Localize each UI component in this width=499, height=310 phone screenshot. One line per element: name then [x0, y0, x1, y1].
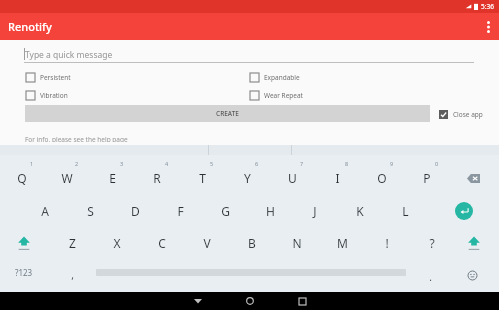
- button[interactable]: F: [164, 200, 196, 222]
- staticText: Vibration: [40, 91, 68, 100]
- staticText: G: [221, 203, 230, 219]
- staticText: ?: [429, 235, 435, 251]
- button[interactable]: M: [326, 232, 358, 254]
- button[interactable]: Y: [231, 167, 263, 189]
- staticText: !: [385, 235, 389, 251]
- staticText: 5:36: [481, 2, 494, 11]
- staticText: Renotify: [8, 19, 52, 34]
- button[interactable]: H: [254, 200, 286, 222]
- button[interactable]: E: [96, 167, 128, 189]
- button[interactable]: Expandable: [250, 69, 300, 85]
- staticText: 8: [345, 160, 349, 167]
- staticText: N: [292, 235, 302, 251]
- staticText: 0: [435, 160, 439, 167]
- button[interactable]: Enter: [455, 202, 473, 220]
- staticText: K: [356, 203, 364, 219]
- button[interactable]: W: [51, 167, 83, 189]
- button[interactable]: ?123: [8, 262, 40, 282]
- staticText: 1: [30, 160, 34, 167]
- button[interactable]: D: [119, 200, 151, 222]
- staticText: D: [131, 203, 140, 219]
- button[interactable]: Wear Repeat: [250, 87, 303, 103]
- staticText: O: [377, 170, 387, 186]
- staticText: R: [153, 170, 161, 186]
- staticText: B: [248, 235, 256, 251]
- button[interactable]: G: [209, 200, 241, 222]
- staticText: I: [335, 170, 340, 186]
- button[interactable]: J: [299, 200, 331, 222]
- button[interactable]: C: [146, 232, 178, 254]
- button[interactable]: .: [414, 266, 446, 288]
- staticText: 4: [165, 160, 169, 167]
- staticText: C: [158, 235, 166, 251]
- staticText: H: [266, 203, 275, 219]
- staticText: P: [423, 170, 431, 186]
- staticText: L: [402, 203, 409, 219]
- button[interactable]: L: [389, 200, 421, 222]
- button[interactable]: N: [281, 232, 313, 254]
- button[interactable]: Recent apps: [292, 292, 312, 310]
- staticText: ?123: [15, 267, 33, 278]
- button[interactable]: X: [101, 232, 133, 254]
- staticText: A: [41, 203, 49, 219]
- staticText: 7: [300, 160, 304, 167]
- staticText: 3: [120, 160, 124, 167]
- button[interactable]: Home: [240, 292, 260, 310]
- staticText: T: [199, 170, 206, 186]
- button[interactable]: Q: [6, 167, 38, 189]
- button[interactable]: O: [366, 167, 398, 189]
- staticText: 2: [75, 160, 79, 167]
- button[interactable]: Z: [56, 232, 88, 254]
- staticText: M: [337, 235, 348, 251]
- staticText: 5: [210, 160, 214, 167]
- staticText: X: [113, 235, 121, 251]
- button[interactable]: P: [411, 167, 443, 189]
- staticText: F: [177, 203, 184, 219]
- staticText: Persistent: [40, 73, 71, 82]
- button[interactable]: More options: [477, 16, 499, 38]
- button[interactable]: !: [371, 232, 403, 254]
- staticText: Wear Repeat: [264, 91, 303, 100]
- staticText: For info, please see the help page: [25, 135, 128, 142]
- button[interactable]: Backspace: [460, 167, 486, 189]
- staticText: 6: [255, 160, 259, 167]
- staticText: U: [288, 170, 297, 186]
- staticText: W: [61, 170, 73, 186]
- staticText: E: [109, 170, 116, 186]
- button[interactable]: Shift right: [460, 231, 488, 255]
- staticText: V: [203, 235, 211, 251]
- staticText: CREATE: [216, 109, 239, 118]
- button[interactable]: CREATE: [25, 105, 430, 122]
- staticText: Y: [244, 170, 251, 186]
- button[interactable]: ,: [56, 264, 88, 286]
- button[interactable]: Shift: [10, 231, 38, 255]
- staticText: J: [313, 203, 317, 219]
- staticText: Z: [69, 235, 76, 251]
- button[interactable]: T: [186, 167, 218, 189]
- staticText: 9: [390, 160, 394, 167]
- staticText: ,: [71, 268, 74, 282]
- button[interactable]: R: [141, 167, 173, 189]
- button[interactable]: K: [344, 200, 376, 222]
- staticText: Q: [17, 170, 27, 186]
- staticText: Type a quick message: [25, 49, 113, 61]
- button[interactable]: Close app: [439, 106, 483, 122]
- button[interactable]: U: [276, 167, 308, 189]
- button[interactable]: S: [74, 200, 106, 222]
- staticText: S: [87, 203, 94, 219]
- button[interactable]: Persistent: [26, 69, 71, 85]
- button[interactable]: Vibration: [26, 87, 68, 103]
- button[interactable]: ?: [416, 232, 448, 254]
- button[interactable]: A: [29, 200, 61, 222]
- button[interactable]: Back: [188, 292, 208, 310]
- button[interactable]: I: [321, 167, 353, 189]
- staticText: Close app: [453, 110, 483, 119]
- button[interactable]: Emoji: [462, 265, 482, 285]
- staticText: Expandable: [264, 73, 300, 82]
- staticText: .: [429, 270, 432, 284]
- button[interactable]: V: [191, 232, 223, 254]
- button[interactable]: B: [236, 232, 268, 254]
